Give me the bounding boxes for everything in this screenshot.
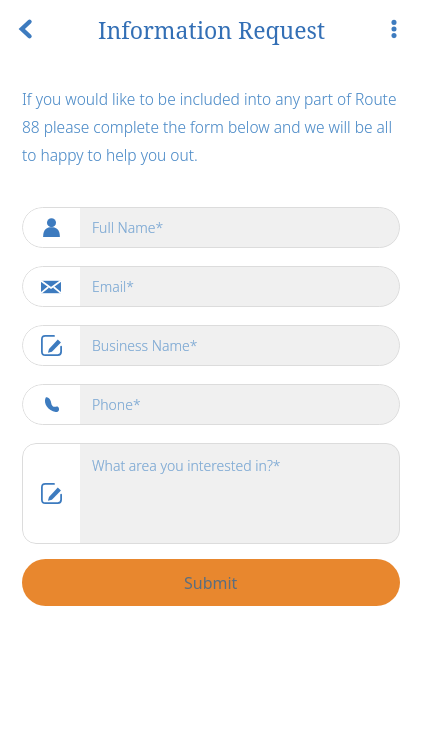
staticText: If you would like to be included into an… — [22, 88, 402, 166]
staticText: Information Request — [98, 14, 325, 45]
staticText: What area you interested in?* — [92, 456, 281, 475]
button[interactable]: Submit — [22, 559, 400, 606]
staticText: Phone* — [92, 395, 141, 414]
staticText: Full Name* — [92, 218, 164, 237]
button[interactable]: What area you interested in?* — [22, 443, 400, 544]
button[interactable]: Email* — [22, 266, 400, 307]
button[interactable]: Phone* — [22, 384, 400, 425]
button[interactable]: Business Name* — [22, 325, 400, 366]
button[interactable]: Back — [4, 7, 48, 51]
staticText: Email* — [92, 277, 134, 296]
staticText: Submit — [184, 572, 238, 594]
staticText: Business Name* — [92, 336, 198, 355]
button[interactable]: Full Name* — [22, 207, 400, 248]
button[interactable]: More options — [372, 7, 416, 51]
